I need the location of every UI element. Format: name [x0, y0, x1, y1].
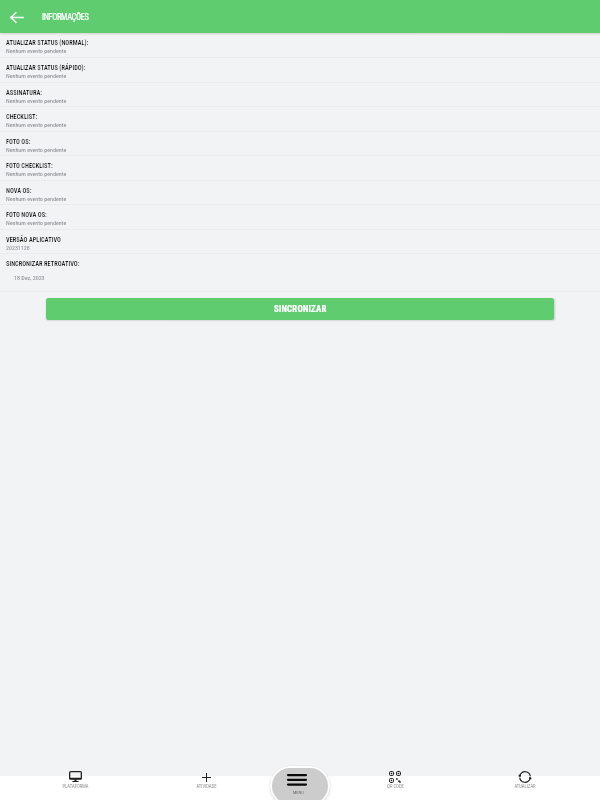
staticText: Nenhum evento pendente: [6, 47, 67, 54]
staticText: QR CODE: [387, 784, 404, 790]
staticText: Nenhum evento pendente: [6, 170, 67, 177]
button[interactable]: ATUALIZAR STATUS (RÁPIDO):: [0, 58, 600, 83]
staticText: SINCRONIZAR: [274, 304, 327, 314]
button[interactable]: SINCRONIZAR: [46, 298, 554, 320]
staticText: FOTO NOVA OS:: [6, 211, 47, 219]
button[interactable]: CHECKLIST:: [0, 107, 600, 132]
staticText: Nenhum evento pendente: [6, 97, 67, 104]
staticText: Nenhum evento pendente: [6, 121, 67, 128]
button[interactable]: FOTO OS:: [0, 132, 600, 156]
button[interactable]: FOTO NOVA OS:: [0, 205, 600, 230]
staticText: ASSINATURA:: [6, 89, 43, 97]
staticText: NOVA OS:: [6, 187, 32, 195]
staticText: CHECKLIST:: [6, 113, 38, 121]
button[interactable]: ATUALIZAR STATUS (NORMAL):: [0, 33, 600, 58]
button[interactable]: SINCRONIZAR RETROATIVO:: [0, 254, 600, 292]
button[interactable]: PLATAFORMA: [45, 768, 105, 800]
button[interactable]: VERSÃO APLICATIVO: [0, 230, 600, 254]
staticText: ATUALIZAR STATUS (NORMAL):: [6, 39, 89, 47]
staticText: ATUALIZAR STATUS (RÁPIDO):: [6, 64, 86, 72]
staticText: Nenhum evento pendente: [6, 219, 67, 226]
button[interactable]: ATIVIDADE: [176, 768, 236, 800]
staticText: Nenhum evento pendente: [6, 195, 67, 202]
button[interactable]: ATUALIZAR: [495, 768, 555, 800]
staticText: Nenhum evento pendente: [6, 146, 67, 153]
staticText: INFORMAÇÕES: [42, 12, 89, 22]
button[interactable]: FOTO CHECKLIST:: [0, 156, 600, 181]
staticText: 18 Dez, 2023: [14, 274, 45, 281]
button[interactable]: Back: [5, 6, 27, 28]
staticText: MENU: [293, 790, 304, 795]
button[interactable]: QR CODE: [365, 768, 425, 800]
staticText: ATIVIDADE: [196, 784, 217, 790]
staticText: PLATAFORMA: [62, 784, 89, 790]
staticText: FOTO OS:: [6, 138, 31, 146]
staticText: SINCRONIZAR RETROATIVO:: [6, 260, 80, 268]
button[interactable]: Menu: [272, 768, 328, 800]
staticText: VERSÃO APLICATIVO: [6, 236, 61, 244]
button[interactable]: NOVA OS:: [0, 181, 600, 205]
button[interactable]: ASSINATURA:: [0, 83, 600, 107]
staticText: Nenhum evento pendente: [6, 72, 67, 79]
staticText: ATUALIZAR: [514, 784, 536, 790]
staticText: 20231128: [6, 244, 30, 251]
staticText: FOTO CHECKLIST:: [6, 162, 53, 170]
